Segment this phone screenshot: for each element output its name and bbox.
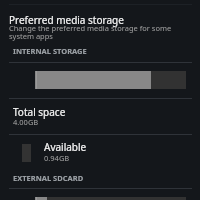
staticText: INTERNAL STORAGE [13,46,87,56]
staticText: EXTERNAL SDCARD [13,173,84,183]
other: External sdcard usage [35,197,186,200]
button[interactable]: Total space [0,99,200,134]
staticText: 0.94GB [44,153,70,163]
staticText: Preferred media storage [9,13,124,27]
staticText: Available [44,140,87,154]
button[interactable]: Available [0,135,200,173]
button[interactable]: Preferred media storage [0,8,200,42]
staticText: Change the preferred media storage for s… [9,23,179,41]
staticText: 4.00GB [13,117,39,127]
other: Internal storage usage [35,71,186,89]
staticText: Total space [13,105,66,119]
